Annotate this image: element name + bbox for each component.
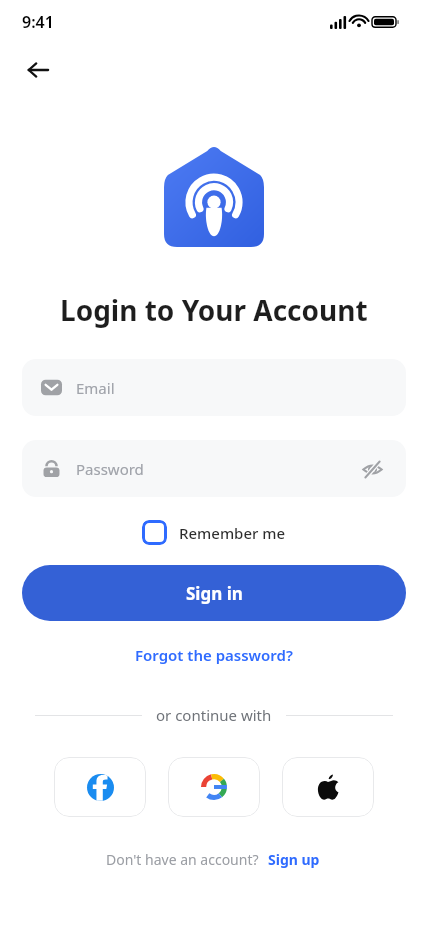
staticText: Password: [76, 459, 144, 479]
button[interactable]: Sign in with Google: [168, 757, 260, 817]
staticText: 9:41: [22, 11, 54, 33]
staticText: Forgot the password?: [135, 645, 293, 665]
button[interactable]: Back: [16, 48, 60, 92]
staticText: Login to Your Account: [60, 291, 368, 329]
button[interactable]: Sign in: [22, 565, 406, 621]
button[interactable]: Sign up: [265, 847, 323, 872]
button[interactable]: Sign in with Facebook: [54, 757, 146, 817]
button[interactable]: Show password: [357, 454, 387, 484]
button[interactable]: Forgot the password?: [127, 641, 301, 669]
button[interactable]: Email: [22, 359, 406, 416]
staticText: Email: [76, 378, 115, 398]
staticText: Remember me: [179, 523, 286, 543]
staticText: or continue with: [156, 705, 272, 725]
staticText: Sign up: [268, 850, 320, 869]
button[interactable]: Remember me: [136, 515, 292, 550]
staticText: Don't have an account?: [106, 850, 259, 869]
button[interactable]: Password: [22, 440, 406, 497]
staticText: Sign in: [186, 582, 243, 605]
button[interactable]: Sign in with Apple: [282, 757, 374, 817]
